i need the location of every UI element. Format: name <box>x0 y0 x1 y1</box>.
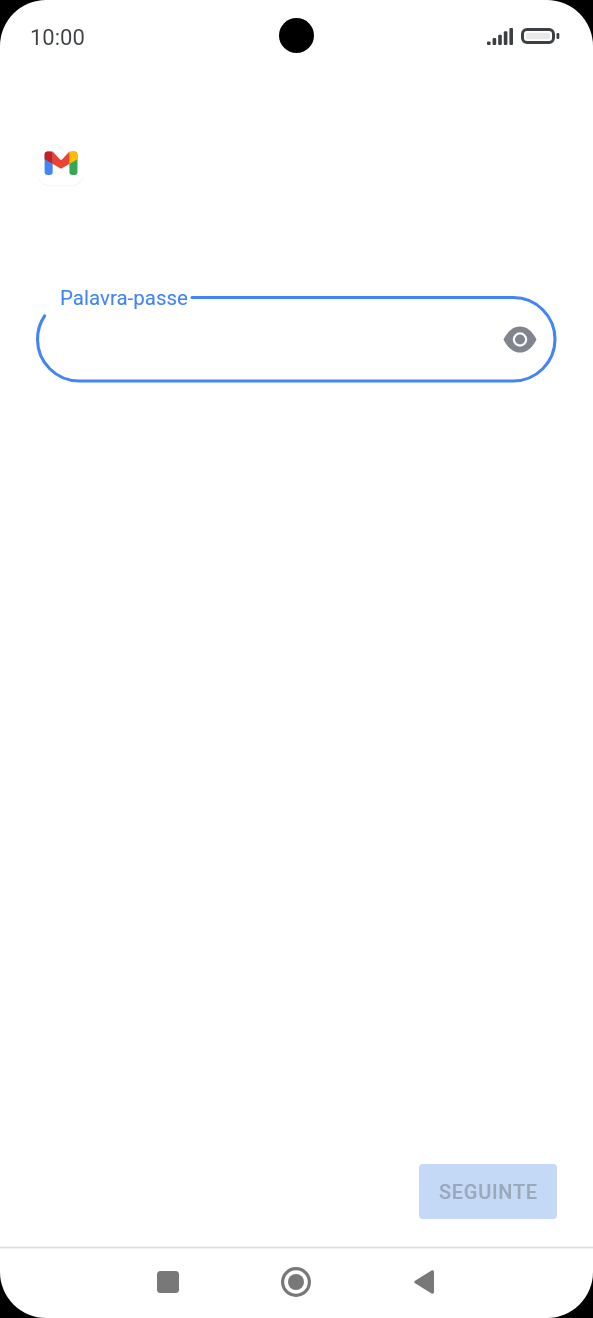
button[interactable]: Palavra-passe <box>36 296 557 382</box>
button[interactable]: Voltar <box>395 1254 451 1310</box>
button[interactable]: Mostrar palavra-passe <box>498 317 542 361</box>
button[interactable]: Recentes <box>140 1254 196 1310</box>
staticText: SEGUINTE <box>439 1180 538 1203</box>
staticText: Palavra-passe <box>60 286 188 310</box>
button[interactable]: Início <box>268 1254 324 1310</box>
staticText: 10:00 <box>30 25 85 51</box>
button[interactable]: SEGUINTE <box>419 1164 557 1219</box>
